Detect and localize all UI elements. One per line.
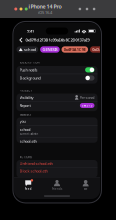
staticText: Report: [19, 103, 30, 108]
staticText: Visibility: [19, 95, 33, 100]
button[interactable]: Unfriend school.eth: [16, 160, 97, 167]
staticText: Personal: [79, 95, 94, 100]
button[interactable]: you: [16, 117, 97, 125]
staticText: PRIVACY: [19, 89, 32, 92]
staticText: 0xD4e5f607a: [92, 47, 114, 52]
staticText: school: [24, 47, 36, 52]
button[interactable]: Back: [18, 36, 23, 43]
button[interactable]: school: [16, 46, 38, 53]
staticText: GENESIS: [42, 47, 57, 52]
button[interactable]: Friends: [43, 180, 71, 191]
staticText: iOS 16.4: [38, 10, 52, 15]
button[interactable]: 0xD4e5f607a: [90, 46, 116, 53]
button[interactable]: Feed: [14, 180, 43, 191]
button[interactable]: Report: [16, 102, 97, 109]
staticText: iPhone 14 Pro: [28, 3, 61, 10]
button[interactable]: Push notifs: [16, 66, 97, 74]
staticText: Background: [19, 75, 40, 81]
staticText: 0x4F3A1C9E: [64, 47, 86, 52]
button[interactable]: school.eth: [16, 137, 97, 145]
staticText: school: [19, 127, 30, 132]
staticText: 0x4515: [82, 104, 93, 107]
staticText: Block school.eth: [19, 168, 47, 173]
button[interactable]: 0x4F3A1C9E: [61, 46, 88, 53]
staticText: Unfriend school.eth: [19, 161, 52, 166]
staticText: Me: [84, 187, 88, 191]
button[interactable]: school: [16, 125, 97, 137]
button[interactable]: GENESIS: [40, 46, 60, 53]
staticText: school.eth: [19, 139, 36, 144]
button[interactable]: Background: [16, 74, 97, 82]
button[interactable]: Block school.eth: [16, 167, 97, 174]
button[interactable]: Me: [71, 180, 100, 191]
staticText: MEMBERS: [19, 113, 30, 116]
button[interactable]: Visibility: [16, 93, 97, 101]
staticText: current admin: [19, 132, 38, 136]
staticText: Feed: [25, 187, 32, 191]
staticText: Friends: [52, 187, 62, 191]
staticText: 9:41: [27, 28, 34, 34]
staticText: ACTIONS: [19, 155, 31, 159]
staticText: SUBSCRIPTION: [19, 61, 39, 64]
staticText: 0x87f1d2F3B1c09aE4b8C2D0137aE9: [25, 37, 89, 43]
staticText: you: [19, 119, 25, 124]
staticText: Push notifs: [19, 67, 37, 72]
